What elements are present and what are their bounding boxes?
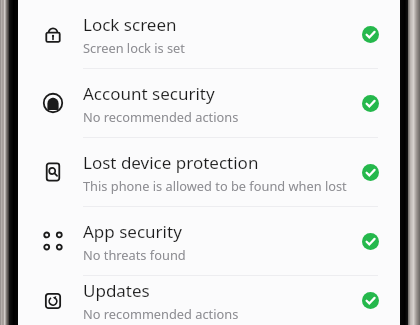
staticText: Lock screen (83, 13, 177, 36)
staticText: No threats found (83, 246, 186, 263)
other: Secure (362, 95, 379, 112)
staticText: No recommended actions (83, 108, 239, 125)
staticText: No recommended actions (83, 305, 239, 322)
staticText: App security (83, 220, 182, 243)
other: Secure (362, 26, 379, 43)
button[interactable]: Lost device protection (18, 138, 400, 206)
button[interactable]: App security (18, 207, 400, 275)
other: Secure (362, 164, 379, 181)
staticText: Account security (83, 82, 215, 105)
button[interactable]: Updates (18, 276, 400, 325)
staticText: Updates (83, 279, 150, 302)
staticText: Screen lock is set (83, 39, 185, 56)
staticText: This phone is allowed to be found when l… (83, 177, 347, 194)
other: Secure (362, 233, 379, 250)
button[interactable]: Account security (18, 69, 400, 137)
other: Secure (362, 292, 379, 309)
staticText: Lost device protection (83, 151, 259, 174)
button[interactable]: Lock screen (18, 0, 400, 68)
